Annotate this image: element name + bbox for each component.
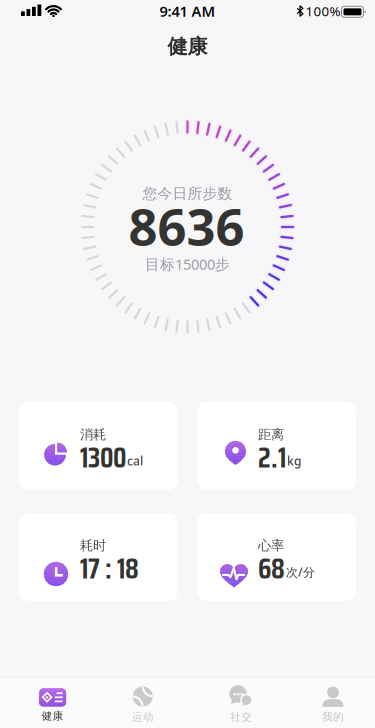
staticText: 次/分 [286,564,315,580]
staticText: 社交 [230,710,252,723]
staticText: kg [287,453,301,469]
staticText: 我的 [322,710,344,723]
staticText: 17 : 18 [80,547,139,591]
staticText: 心率 [258,537,284,554]
staticText: 耗时 [80,537,106,554]
button[interactable]: 我的 [293,682,373,728]
button[interactable]: 健康 [13,682,93,728]
button[interactable]: 心率 [197,513,356,601]
button[interactable]: 耗时 [19,513,178,601]
staticText: cal [127,453,143,469]
staticText: 目标15000步 [145,254,230,274]
button[interactable]: 消耗 [19,402,178,490]
staticText: 距离 [258,426,284,443]
staticText: 100% [305,2,340,20]
staticText: 2.1 [258,436,286,480]
staticText: 健康 [42,709,64,722]
staticText: 1300 [80,436,126,480]
staticText: 消耗 [80,426,106,443]
button[interactable]: 运动 [103,682,183,728]
staticText: 68 [258,547,285,591]
staticText: 8636 [128,192,244,259]
staticText: 运动 [132,710,154,723]
staticText: 健康 [167,34,207,59]
staticText: 您今日所步数 [142,184,232,202]
button[interactable]: 社交 [201,682,281,728]
button[interactable]: 距离 [197,402,356,490]
staticText: 9:41 AM [159,1,215,21]
